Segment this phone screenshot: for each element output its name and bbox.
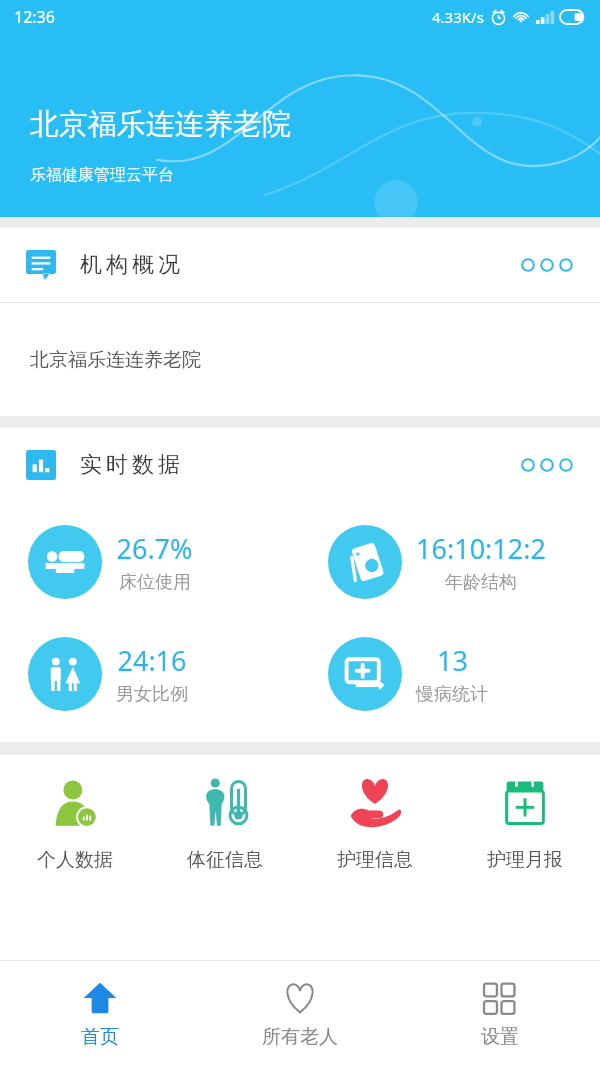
button[interactable]: 护理月报 xyxy=(450,755,600,893)
button[interactable]: All elders xyxy=(200,961,400,1067)
staticText: 设置 xyxy=(481,1025,519,1049)
button[interactable]: 26.7% xyxy=(0,512,300,612)
button[interactable]: More options xyxy=(520,257,574,273)
button[interactable]: 实时数据 xyxy=(0,428,600,502)
staticText: 实时数据 xyxy=(78,451,182,479)
staticText: 所有老人 xyxy=(262,1025,338,1049)
staticText: 24:16 xyxy=(117,642,187,679)
button[interactable]: 24:16 xyxy=(0,624,300,724)
staticText: 乐福健康管理云平台 xyxy=(30,165,174,185)
staticText: 12:36 xyxy=(14,6,55,28)
button[interactable]: 个人数据 xyxy=(0,755,150,893)
staticText: 北京福乐连连养老院 xyxy=(30,106,291,143)
staticText: 男女比例 xyxy=(116,683,188,706)
button[interactable]: 机构概况 xyxy=(0,228,600,302)
button[interactable]: 体征信息 xyxy=(150,755,300,893)
staticText: 13 xyxy=(437,642,468,679)
button[interactable]: More options xyxy=(520,457,574,473)
staticText: 护理信息 xyxy=(337,848,413,872)
staticText: 体征信息 xyxy=(187,848,263,872)
staticText: 北京福乐连连养老院 xyxy=(30,348,201,372)
button[interactable]: Home xyxy=(0,961,200,1067)
staticText: 慢病统计 xyxy=(416,683,488,706)
staticText: 16:10:12:2 xyxy=(416,530,546,567)
staticText: 26.7% xyxy=(116,530,193,567)
button[interactable]: 13 xyxy=(300,624,600,724)
button[interactable]: Settings xyxy=(400,961,600,1067)
staticText: 首页 xyxy=(81,1025,119,1049)
staticText: 护理月报 xyxy=(487,848,563,872)
staticText: 个人数据 xyxy=(37,848,113,872)
staticText: 4.33K/s xyxy=(432,7,484,27)
staticText: 床位使用 xyxy=(119,571,191,594)
staticText: 年龄结构 xyxy=(445,571,517,594)
staticText: 机构概况 xyxy=(78,251,182,279)
button[interactable]: 护理信息 xyxy=(300,755,450,893)
button[interactable]: 16:10:12:2 xyxy=(300,512,600,612)
